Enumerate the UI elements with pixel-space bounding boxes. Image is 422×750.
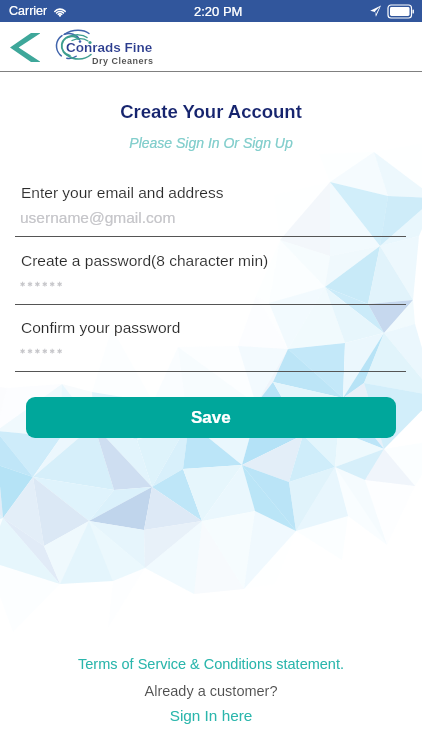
staticText: username@gmail.com: [20, 209, 176, 226]
button[interactable]: Save: [26, 397, 396, 438]
staticText: Please Sign In Or Sign Up: [0, 135, 422, 151]
staticText: Confirm your password: [21, 319, 181, 336]
staticText: Carrier: [9, 4, 48, 18]
button[interactable]: Back: [4, 26, 46, 68]
staticText: Conrads Fine: [66, 40, 153, 55]
button[interactable]: Sign In here: [0, 707, 422, 724]
staticText: 2:20 PM: [194, 4, 243, 19]
staticText: Already a customer?: [0, 683, 422, 699]
staticText: Create Your Account: [0, 101, 422, 122]
staticText: Dry Cleaners: [92, 56, 154, 66]
staticText: Enter your email and address: [21, 184, 224, 201]
staticText: Save: [191, 408, 231, 427]
button[interactable]: Terms of Service & Conditions statement.: [0, 656, 422, 672]
staticText: Create a password(8 character min): [21, 252, 269, 269]
